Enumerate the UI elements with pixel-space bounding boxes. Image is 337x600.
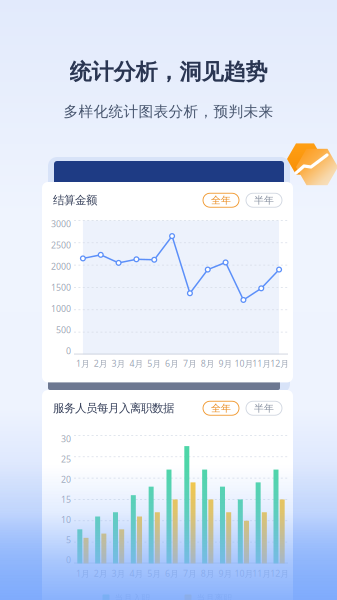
- staticText: 0: [66, 554, 71, 566]
- staticText: 1月: [76, 567, 90, 579]
- button[interactable]: 半年: [246, 401, 282, 415]
- staticText: 10月: [234, 567, 253, 579]
- staticText: 5: [66, 534, 71, 546]
- staticText: 6月: [165, 357, 179, 369]
- staticText: 11月: [252, 357, 271, 369]
- staticText: 10月: [234, 357, 253, 369]
- staticText: 1月: [76, 357, 90, 369]
- staticText: 9月: [219, 567, 233, 579]
- staticText: 8月: [201, 567, 215, 579]
- staticText: 结算金额: [53, 193, 97, 207]
- staticText: 12月: [270, 567, 289, 579]
- staticText: 2500: [51, 239, 71, 251]
- staticText: 1500: [51, 281, 71, 293]
- staticText: 4月: [129, 357, 143, 369]
- staticText: 3月: [112, 357, 126, 369]
- staticText: 统计分析，洞见趋势: [69, 58, 267, 86]
- staticText: 半年: [254, 402, 274, 414]
- staticText: 当月离职: [196, 592, 232, 600]
- staticText: 0: [66, 345, 71, 357]
- staticText: 6月: [165, 567, 179, 579]
- staticText: 3000: [51, 218, 71, 230]
- staticText: 半年: [254, 194, 274, 206]
- staticText: 500: [56, 324, 71, 336]
- staticText: 服务人员每月入离职数据: [53, 401, 174, 415]
- staticText: 9月: [219, 357, 233, 369]
- staticText: 7月: [183, 567, 197, 579]
- staticText: 多样化统计图表分析，预判未来: [63, 103, 273, 121]
- staticText: 5月: [147, 567, 161, 579]
- staticText: 4月: [129, 567, 143, 579]
- staticText: 全年: [211, 194, 231, 206]
- staticText: 12月: [270, 357, 289, 369]
- staticText: 5月: [147, 357, 161, 369]
- staticText: 2000: [51, 260, 71, 272]
- staticText: 8月: [201, 357, 215, 369]
- button[interactable]: 全年: [203, 401, 239, 415]
- staticText: 7月: [183, 357, 197, 369]
- staticText: 2月: [94, 357, 108, 369]
- staticText: 当月入职: [114, 592, 150, 600]
- staticText: 1000: [51, 303, 71, 315]
- staticText: 10: [61, 514, 71, 526]
- staticText: 30: [61, 433, 71, 445]
- button[interactable]: 全年: [203, 193, 239, 207]
- staticText: 全年: [211, 402, 231, 414]
- staticText: 3月: [112, 567, 126, 579]
- staticText: 25: [61, 453, 71, 465]
- button[interactable]: 半年: [246, 193, 282, 207]
- staticText: 11月: [252, 567, 271, 579]
- staticText: 2月: [94, 567, 108, 579]
- staticText: 20: [61, 473, 71, 485]
- staticText: 15: [61, 493, 71, 505]
